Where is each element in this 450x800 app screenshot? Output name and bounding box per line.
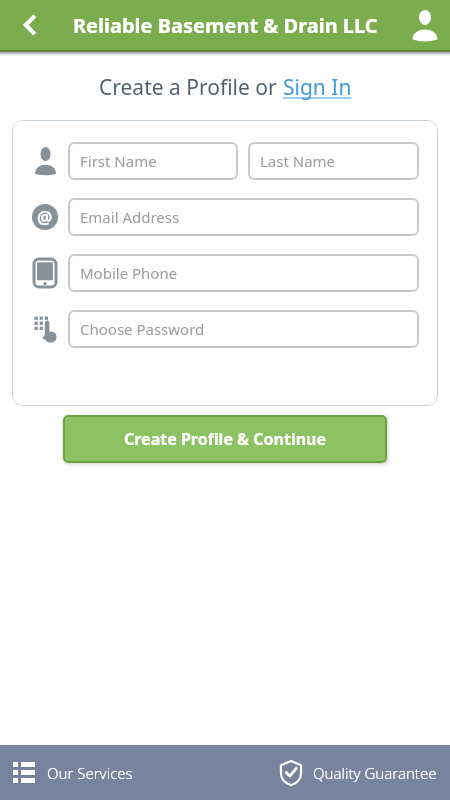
button[interactable]: Email Address xyxy=(68,198,419,236)
button[interactable]: First Name xyxy=(68,142,238,180)
staticText: Choose Password xyxy=(80,319,205,339)
staticText: Mobile Phone xyxy=(80,263,178,283)
staticText: Email Address xyxy=(80,207,180,227)
button[interactable]: Sign In xyxy=(283,73,352,102)
button[interactable]: Quality Guarantee xyxy=(279,760,437,786)
button[interactable] xyxy=(14,8,48,42)
button[interactable]: Mobile Phone xyxy=(68,254,419,292)
staticText: Create Profile & Continue xyxy=(124,428,327,450)
button[interactable]: Last Name xyxy=(248,142,419,180)
staticText: Reliable Basement & Drain LLC xyxy=(73,12,378,39)
button[interactable]: Choose Password xyxy=(68,310,419,348)
staticText: @ xyxy=(37,206,53,229)
button[interactable] xyxy=(408,8,442,42)
staticText: Quality Guarantee xyxy=(313,763,437,783)
staticText: First Name xyxy=(80,151,157,171)
button[interactable]: Create Profile & Continue xyxy=(63,415,387,463)
button[interactable]: Our Services xyxy=(13,762,133,783)
staticText: Our Services xyxy=(47,763,133,783)
staticText: Last Name xyxy=(260,151,336,171)
staticText: Create a Profile or xyxy=(99,73,283,102)
